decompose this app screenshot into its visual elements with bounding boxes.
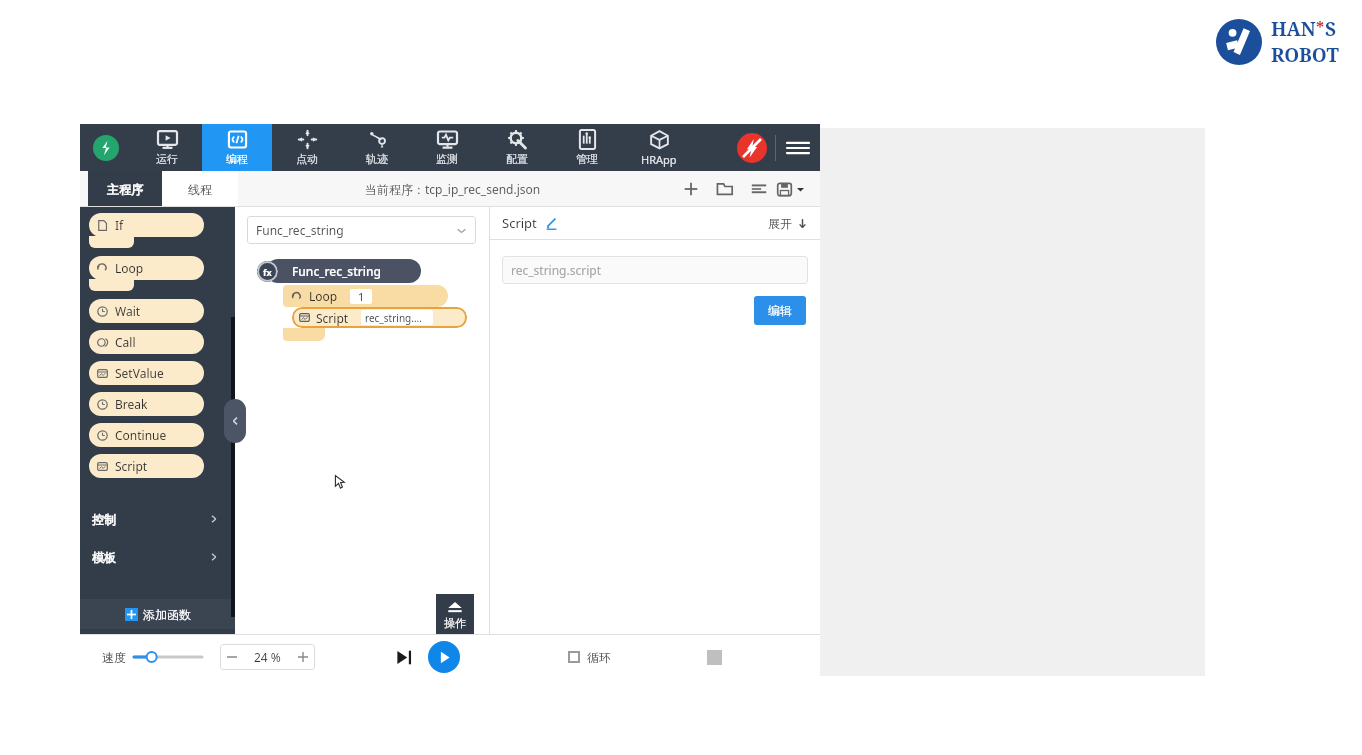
staticText: 运行 bbox=[156, 152, 178, 166]
button[interactable]: Variables bbox=[742, 172, 776, 206]
button[interactable]: 运行 bbox=[132, 124, 202, 171]
staticText: 主程序 bbox=[107, 182, 143, 197]
button[interactable]: Increase speed bbox=[291, 644, 315, 670]
button[interactable]: 添加函数 bbox=[80, 599, 235, 629]
staticText: 速度 bbox=[102, 650, 126, 665]
button[interactable]: Speed slider bbox=[134, 647, 202, 667]
staticText: 1 bbox=[358, 289, 365, 304]
staticText: Script bbox=[316, 310, 349, 326]
staticText: HAN bbox=[1271, 16, 1316, 42]
button[interactable]: Script bbox=[292, 307, 467, 328]
staticText: 编程 bbox=[226, 152, 248, 166]
staticText: Loop bbox=[115, 260, 144, 276]
staticText: 展开 bbox=[768, 216, 792, 231]
staticText: 当前程序：tcp_ip_rec_send.json bbox=[365, 181, 541, 197]
button[interactable]: rec_string.script bbox=[502, 256, 808, 284]
button[interactable]: Step bbox=[389, 642, 419, 672]
button[interactable]: 模板 bbox=[92, 546, 223, 568]
staticText: Func_rec_string bbox=[256, 222, 344, 238]
button[interactable]: 线程 bbox=[162, 171, 238, 207]
button[interactable]: Func_rec_string bbox=[266, 259, 421, 283]
staticText: SetValue bbox=[115, 365, 164, 381]
button[interactable]: If bbox=[89, 213, 204, 237]
button[interactable]: Emergency stop bbox=[729, 125, 775, 171]
staticText: 点动 bbox=[296, 152, 318, 166]
button[interactable]: 控制 bbox=[92, 508, 223, 530]
staticText: Loop bbox=[309, 288, 338, 304]
button[interactable]: Run bbox=[428, 641, 460, 673]
button[interactable]: Edit name bbox=[543, 215, 559, 231]
staticText: rec_string.script bbox=[511, 262, 601, 278]
button[interactable]: Continue bbox=[89, 423, 204, 447]
button[interactable]: 监测 bbox=[412, 124, 482, 171]
button[interactable]: 编辑 bbox=[754, 296, 806, 325]
button[interactable]: Loop bbox=[283, 285, 448, 307]
staticText: Wait bbox=[115, 303, 141, 319]
staticText: 管理 bbox=[576, 152, 598, 166]
staticText: Script bbox=[115, 458, 148, 474]
button[interactable]: 主程序 bbox=[88, 171, 162, 207]
button[interactable]: Save bbox=[776, 174, 804, 204]
button[interactable]: Wait bbox=[89, 299, 204, 323]
button[interactable]: Break bbox=[89, 392, 204, 416]
staticText: 24 % bbox=[254, 649, 281, 665]
staticText: 轨迹 bbox=[366, 152, 388, 166]
staticText: 循环 bbox=[587, 650, 611, 665]
staticText: Script bbox=[502, 214, 537, 232]
staticText: S bbox=[1325, 16, 1337, 42]
button[interactable]: Menu bbox=[776, 124, 820, 171]
staticText: 控制 bbox=[92, 512, 116, 527]
staticText: rec_string.... bbox=[365, 311, 422, 325]
staticText: Continue bbox=[115, 427, 167, 443]
button[interactable]: 编程 bbox=[202, 124, 272, 171]
button[interactable]: 配置 bbox=[482, 124, 552, 171]
staticText: HRApp bbox=[641, 152, 677, 167]
button[interactable]: Decrease speed bbox=[220, 644, 244, 670]
staticText: 添加函数 bbox=[143, 607, 191, 622]
button[interactable]: 点动 bbox=[272, 124, 342, 171]
button[interactable]: Call bbox=[89, 330, 204, 354]
staticText: * bbox=[1316, 16, 1325, 38]
staticText: 线程 bbox=[188, 182, 212, 197]
button[interactable]: 轨迹 bbox=[342, 124, 412, 171]
button[interactable]: 管理 bbox=[552, 124, 622, 171]
staticText: 编辑 bbox=[768, 303, 792, 318]
button[interactable]: Home bbox=[80, 124, 132, 171]
staticText: ROBOT bbox=[1271, 42, 1339, 68]
staticText: Call bbox=[115, 334, 136, 350]
staticText: Break bbox=[115, 396, 148, 412]
button[interactable]: SetValue bbox=[89, 361, 204, 385]
button[interactable]: Add bbox=[674, 172, 708, 206]
button[interactable]: Open bbox=[708, 172, 742, 206]
button[interactable]: Collapse panel bbox=[224, 399, 246, 443]
staticText: 配置 bbox=[506, 152, 528, 166]
button[interactable]: 展开 bbox=[768, 216, 808, 231]
button[interactable]: Loop bbox=[89, 256, 204, 280]
staticText: Func_rec_string bbox=[292, 263, 382, 279]
button[interactable]: 操作 bbox=[436, 594, 474, 634]
button[interactable]: HRApp bbox=[622, 124, 696, 171]
staticText: 模板 bbox=[92, 550, 116, 565]
button[interactable]: Func_rec_string bbox=[247, 216, 476, 244]
button[interactable]: 循环 bbox=[568, 644, 611, 670]
button[interactable]: Script bbox=[89, 454, 204, 478]
staticText: If bbox=[115, 217, 124, 233]
staticText: 监测 bbox=[436, 152, 458, 166]
staticText: 操作 bbox=[444, 616, 466, 630]
staticText: fx bbox=[263, 266, 272, 278]
